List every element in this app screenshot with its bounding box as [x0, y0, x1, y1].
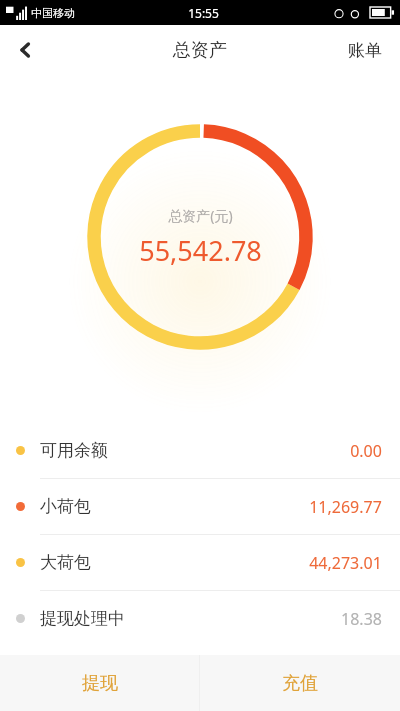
staticText: 15:55	[188, 5, 219, 21]
staticText: 总资产	[173, 39, 227, 62]
button[interactable]: 账单	[330, 25, 400, 75]
staticText: 18.38	[341, 608, 382, 630]
button[interactable]: 大荷包	[0, 535, 400, 590]
staticText: 总资产(元)	[168, 206, 233, 225]
staticText: 中国移动	[31, 6, 75, 20]
staticText: 可用余额	[40, 440, 108, 461]
button[interactable]: 可用余额	[0, 423, 400, 478]
staticText: 11,269.77	[309, 496, 382, 518]
button[interactable]: 小荷包	[0, 479, 400, 534]
button[interactable]: 提现	[0, 655, 199, 711]
staticText: 0.00	[350, 440, 382, 462]
button[interactable]: 提现处理中	[0, 591, 400, 646]
staticText: 提现处理中	[40, 608, 125, 629]
button[interactable]: Back	[0, 25, 52, 75]
staticText: 大荷包	[40, 552, 91, 573]
staticText: 小荷包	[40, 496, 91, 517]
staticText: 提现	[82, 672, 118, 695]
staticText: 44,273.01	[309, 552, 382, 574]
staticText: 55,542.78	[139, 232, 262, 269]
staticText: 账单	[348, 40, 382, 61]
button[interactable]: 充值	[200, 655, 400, 711]
staticText: 充值	[282, 672, 318, 695]
